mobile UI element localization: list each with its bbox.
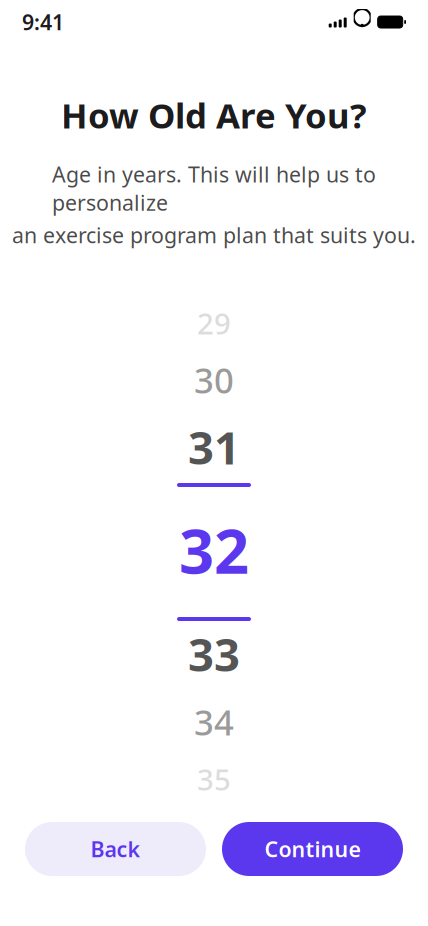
staticText: Back: [90, 835, 140, 863]
button[interactable]: 34: [84, 691, 344, 753]
staticText: How Old Are You?: [61, 92, 367, 138]
button[interactable]: 35: [84, 753, 344, 805]
staticText: Age in years. This will help us to perso…: [52, 160, 376, 217]
button[interactable]: 33: [84, 617, 344, 691]
staticText: 9:41: [22, 8, 64, 36]
staticText: an exercise program plan that suits you.: [12, 221, 416, 249]
staticText: 32: [179, 509, 249, 591]
staticText: 29: [197, 303, 231, 342]
button[interactable]: Continue: [222, 822, 403, 876]
staticText: 31: [188, 417, 240, 477]
staticText: Continue: [264, 835, 360, 863]
staticText: 33: [188, 624, 240, 684]
button[interactable]: 32: [84, 483, 344, 617]
button[interactable]: Back: [25, 822, 206, 876]
button[interactable]: 30: [84, 349, 344, 411]
staticText: 35: [197, 759, 231, 798]
staticText: 34: [194, 699, 234, 745]
button[interactable]: 29: [84, 297, 344, 349]
button[interactable]: 31: [84, 411, 344, 483]
staticText: 30: [194, 357, 234, 403]
